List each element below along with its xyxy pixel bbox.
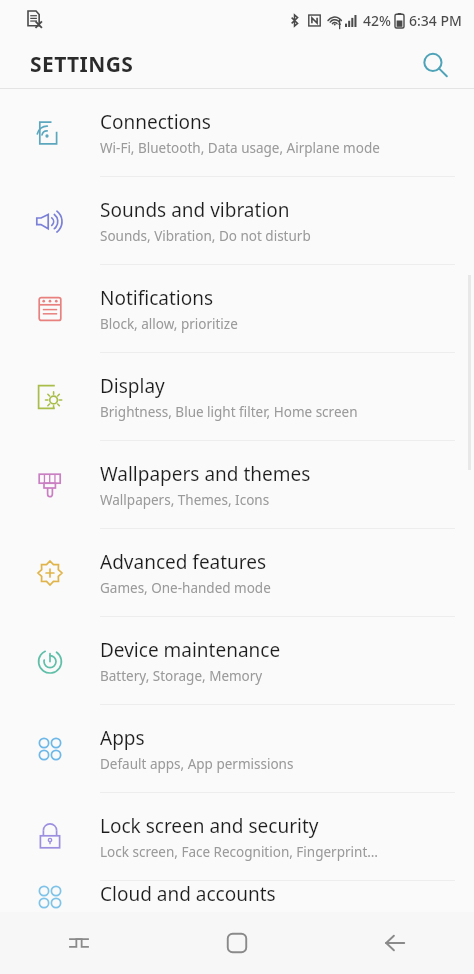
staticText: Default apps, App permissions bbox=[100, 755, 294, 773]
staticText: Brightness, Blue light filter, Home scre… bbox=[100, 403, 358, 421]
staticText: Lock screen, Face Recognition, Fingerpri… bbox=[100, 843, 378, 861]
button[interactable]: Wallpapers and themes bbox=[0, 441, 474, 529]
button[interactable]: Sounds and vibration bbox=[0, 177, 474, 265]
button[interactable]: Lock screen and security bbox=[0, 793, 474, 881]
staticText: 42% bbox=[363, 11, 391, 30]
button[interactable]: Cloud and accounts bbox=[0, 881, 474, 912]
staticText: Battery, Storage, Memory bbox=[100, 667, 263, 685]
staticText: Sounds and vibration bbox=[100, 197, 290, 223]
staticText: Wallpapers, Themes, Icons bbox=[100, 491, 270, 509]
button[interactable]: Search bbox=[418, 48, 452, 82]
button[interactable]: Display bbox=[0, 353, 474, 441]
staticText: Wi-Fi, Bluetooth, Data usage, Airplane m… bbox=[100, 139, 380, 157]
staticText: Games, One-handed mode bbox=[100, 579, 271, 597]
staticText: Display bbox=[100, 373, 165, 399]
button[interactable]: Device maintenance bbox=[0, 617, 474, 705]
staticText: Apps bbox=[100, 725, 145, 751]
staticText: Lock screen and security bbox=[100, 813, 319, 839]
button[interactable]: Advanced features bbox=[0, 529, 474, 617]
staticText: 6:34 PM bbox=[409, 11, 462, 30]
button[interactable]: Apps bbox=[0, 705, 474, 793]
button[interactable]: Back bbox=[316, 912, 474, 974]
button[interactable]: Notifications bbox=[0, 265, 474, 353]
staticText: Block, allow, prioritize bbox=[100, 315, 238, 333]
button[interactable]: Connections bbox=[0, 89, 474, 177]
staticText: Sounds, Vibration, Do not disturb bbox=[100, 227, 311, 245]
staticText: Device maintenance bbox=[100, 637, 281, 663]
button[interactable]: Recents bbox=[0, 912, 158, 974]
button[interactable]: Home bbox=[158, 912, 316, 974]
staticText: Advanced features bbox=[100, 549, 267, 575]
staticText: Connections bbox=[100, 109, 211, 135]
staticText: Cloud and accounts bbox=[100, 881, 276, 907]
staticText: Wallpapers and themes bbox=[100, 461, 311, 487]
staticText: Notifications bbox=[100, 285, 214, 311]
staticText: SETTINGS bbox=[30, 50, 134, 79]
